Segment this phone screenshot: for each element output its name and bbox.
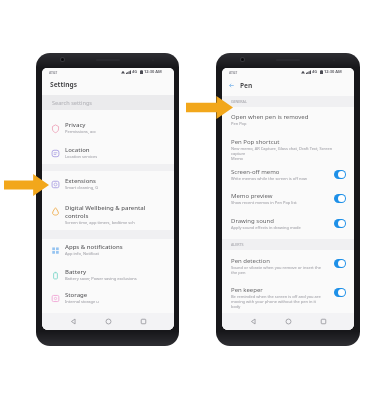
staticText: Write memos while the screen is off now (231, 176, 307, 181)
staticText: GENERAL (231, 99, 247, 104)
button[interactable]: Pen Pop shortcut (222, 138, 354, 161)
staticText: Open when pen is removed (231, 113, 309, 121)
button[interactable]: Recent apps (137, 315, 150, 328)
button[interactable]: Back (247, 315, 260, 328)
staticText: Memo (231, 156, 244, 161)
staticText: Digital Wellbeing & parental (65, 204, 146, 212)
button[interactable]: Pen keeper (334, 288, 346, 297)
staticText: Battery saver, Power saving exclusions (65, 276, 137, 281)
staticText: controls (65, 212, 89, 220)
button[interactable]: Drawing sound (222, 217, 354, 230)
staticText: Pen detection (231, 257, 270, 265)
staticText: Smart cleaning, G (65, 185, 99, 190)
button[interactable]: Apps & notifications (42, 243, 174, 266)
staticText: Be reminded when the screen is off and y… (231, 294, 321, 299)
button[interactable]: Pen detection (222, 257, 354, 275)
staticText: Location (65, 146, 90, 154)
button[interactable]: Home (282, 315, 295, 328)
staticText: Extensions (65, 177, 96, 185)
button[interactable]: Location (42, 146, 174, 169)
button[interactable]: Battery (42, 268, 174, 291)
staticText: Location services (65, 154, 98, 159)
staticText: Settings (50, 80, 78, 89)
button[interactable]: Pen detection (334, 259, 346, 268)
staticText: 12:30 AM (324, 69, 342, 74)
staticText: Pen keeper (231, 286, 263, 294)
button[interactable]: Privacy (42, 121, 174, 144)
button[interactable]: Storage (42, 291, 174, 314)
staticText: App info, Notificat (65, 251, 99, 256)
button[interactable]: Back (67, 315, 80, 328)
staticText: Show recent memos in Pen Pop list (231, 200, 297, 205)
button[interactable]: Back (228, 82, 235, 89)
staticText: Storage (65, 291, 88, 299)
staticText: 12:30 AM (144, 69, 162, 74)
button[interactable]: Home (102, 315, 115, 328)
button[interactable]: Pen keeper (222, 286, 354, 309)
button[interactable]: Digital Wellbeing & parental (42, 204, 174, 230)
staticText: the pen (231, 270, 246, 275)
button[interactable]: Screen-off memo (334, 170, 346, 179)
staticText: Screen time, app timers, bedtime sch (65, 220, 135, 225)
staticText: Privacy (65, 121, 86, 129)
button[interactable]: Open when pen is removed (222, 113, 354, 126)
staticText: ALERTS (231, 242, 244, 247)
staticText: Apps & notifications (65, 243, 123, 251)
staticText: 4G (132, 69, 138, 74)
staticText: Pen (240, 81, 253, 90)
staticText: moving with your phone without the pen i… (231, 299, 316, 304)
staticText: body (231, 304, 241, 309)
button[interactable]: Screen-off memo (222, 168, 354, 181)
button[interactable]: Recent apps (317, 315, 330, 328)
button[interactable]: Memo preview (334, 194, 346, 203)
button[interactable]: Extensions (42, 177, 174, 200)
staticText: Battery (65, 268, 87, 276)
staticText: AT&T (49, 70, 58, 75)
staticText: Drawing sound (231, 217, 274, 225)
staticText: Search settings (52, 99, 93, 107)
button[interactable]: Memo preview (222, 192, 354, 205)
staticText: Apply sound effects in drawing mode (231, 225, 301, 230)
staticText: Internal storage u (65, 299, 99, 304)
button[interactable]: Drawing sound (334, 219, 346, 228)
staticText: Pen Pop shortcut (231, 138, 280, 146)
staticText: Permissions, acc (65, 129, 96, 134)
staticText: Pen Pop (231, 121, 247, 126)
staticText: New memo, AR Capture, Glass chat, Draft … (231, 146, 346, 156)
staticText: AT&T (229, 70, 238, 75)
staticText: Sound or vibrate when you remove or inse… (231, 265, 321, 270)
staticText: 4G (312, 69, 318, 74)
staticText: Memo preview (231, 192, 273, 200)
staticText: Screen-off memo (231, 168, 280, 176)
button[interactable]: Search settings (42, 95, 174, 110)
